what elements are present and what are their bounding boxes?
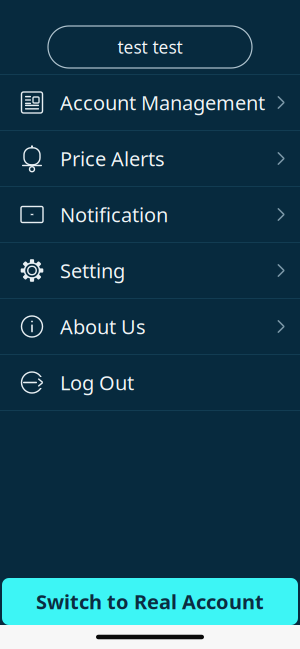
- staticText: About Us: [60, 313, 146, 340]
- button[interactable]: Log Out: [0, 355, 300, 411]
- button[interactable]: About Us: [0, 299, 300, 355]
- staticText: Switch to Real Account: [36, 588, 264, 615]
- staticText: test test: [117, 35, 182, 58]
- button[interactable]: Setting: [0, 243, 300, 299]
- staticText: Notification: [60, 201, 168, 228]
- button[interactable]: Notification: [0, 187, 300, 243]
- staticText: Price Alerts: [60, 145, 165, 172]
- button[interactable]: Price Alerts: [0, 131, 300, 187]
- button[interactable]: Account Management: [0, 75, 300, 131]
- staticText: Log Out: [60, 369, 134, 396]
- staticText: Account Management: [60, 89, 265, 116]
- button[interactable]: Switch to Real Account: [2, 578, 298, 625]
- button[interactable]: test test: [48, 26, 252, 68]
- staticText: Setting: [60, 257, 125, 284]
